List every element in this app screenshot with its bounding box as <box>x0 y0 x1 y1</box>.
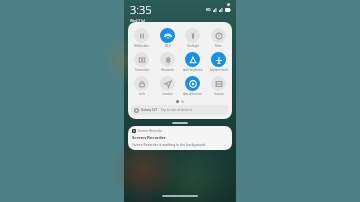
staticText: Tap to see all devices <box>161 108 193 112</box>
button[interactable]: Galaxy S21 <box>131 105 229 115</box>
staticText: Anti-distraction <box>183 92 202 96</box>
staticText: Galaxy S21 <box>141 108 158 112</box>
staticText: Lock <box>139 92 145 96</box>
button[interactable]: Scanner <box>206 75 231 97</box>
button[interactable]: Airplane mode <box>206 51 231 73</box>
staticText: 3:35 <box>130 2 152 17</box>
staticText: Screenshot <box>135 68 149 72</box>
staticText: Mobile data <box>134 44 149 48</box>
button[interactable]: Screenshot <box>129 51 154 73</box>
staticText: HD <box>206 8 211 12</box>
button[interactable]: Anti-distraction <box>180 75 205 97</box>
staticText: Screen Recorder is working in the backgr… <box>132 142 206 147</box>
staticText: Wed 7 Jul <box>130 18 146 22</box>
staticText: Screen Recorder <box>132 135 166 141</box>
button[interactable]: Bluetooth <box>155 51 180 73</box>
staticText: Auto brightness <box>183 68 203 72</box>
staticText: Mute <box>215 44 222 48</box>
staticText: Scanner <box>214 92 224 96</box>
staticText: Flashlight <box>187 44 199 48</box>
button[interactable]: Mobile data <box>129 27 154 49</box>
staticText: Wi-Fi <box>165 44 171 48</box>
button[interactable]: Wi-Fi <box>155 27 180 49</box>
button[interactable]: Mute <box>206 27 231 49</box>
button[interactable]: Location <box>155 75 180 97</box>
staticText: Bluetooth <box>161 68 174 72</box>
button[interactable]: Screen Recorder <box>128 126 232 150</box>
button[interactable]: Flashlight <box>180 27 205 49</box>
staticText: Airplane mode <box>210 68 228 72</box>
staticText: Screen Recorder <box>138 129 163 133</box>
staticText: Location <box>162 92 173 96</box>
button[interactable]: Auto brightness <box>180 51 205 73</box>
button[interactable]: Lock <box>129 75 154 97</box>
